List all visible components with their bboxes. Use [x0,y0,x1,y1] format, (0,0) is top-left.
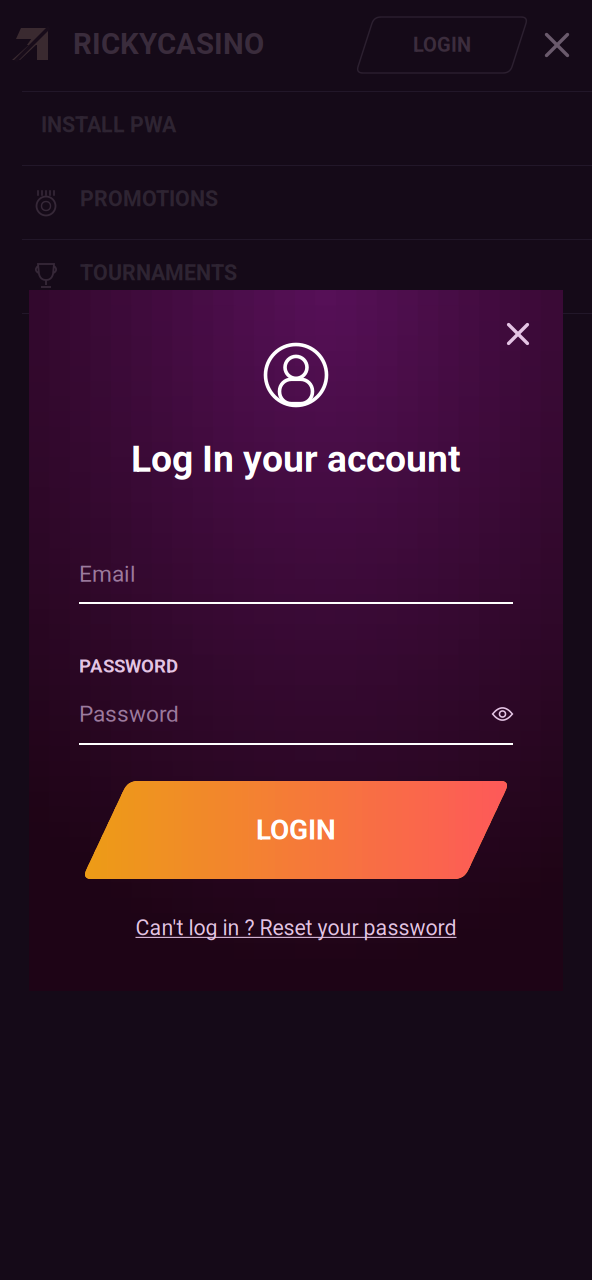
staticText: LOGIN [413,33,471,57]
button[interactable]: LOGIN [356,17,528,73]
staticText: Email [79,561,136,587]
button[interactable]: TOURNAMENTS [0,236,592,310]
staticText: Password [79,701,179,727]
staticText: Can't log in ? Reset your password [135,915,456,940]
button[interactable]: PROMOTIONS [0,162,592,236]
button[interactable]: INSTALL PWA [0,88,592,162]
button[interactable]: Close [490,306,546,362]
staticText: PASSWORD [79,655,178,677]
staticText: LOGIN [256,814,336,846]
staticText: Log In your account [131,437,461,481]
staticText: TOURNAMENTS [80,260,237,285]
button[interactable]: LOGIN [82,781,510,879]
staticText: INSTALL PWA [41,112,176,137]
button[interactable]: Can't log in ? Reset your password [135,911,456,945]
staticText: PROMOTIONS [80,186,218,211]
button[interactable]: Close menu [530,18,584,72]
staticText: RICKYCASINO [73,27,264,61]
